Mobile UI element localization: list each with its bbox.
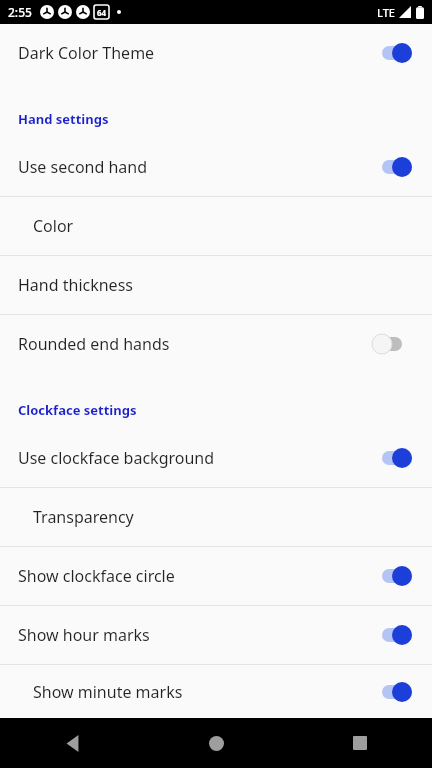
staticText: Hand thickness — [18, 274, 133, 296]
button[interactable]: On — [372, 679, 412, 705]
button[interactable]: On — [372, 622, 412, 648]
staticText: Use clockface background — [18, 447, 215, 469]
staticText: Use second hand — [18, 156, 148, 178]
button[interactable]: Use second hand — [0, 138, 432, 196]
staticText: Show clockface circle — [18, 565, 175, 587]
button[interactable]: Show minute marks — [0, 665, 432, 718]
button[interactable]: Home — [144, 718, 288, 768]
button[interactable]: Transparency — [0, 488, 432, 546]
button[interactable]: Use clockface background — [0, 429, 432, 487]
button[interactable]: On — [372, 154, 412, 180]
button[interactable]: On — [372, 563, 412, 589]
staticText: 64 — [97, 7, 107, 18]
button[interactable]: Dark Color Theme — [0, 24, 432, 82]
staticText: Hand settings — [18, 110, 109, 128]
button[interactable]: Show clockface circle — [0, 547, 432, 605]
staticText: Color — [33, 215, 74, 237]
staticText: Transparency — [33, 506, 134, 528]
staticText: Clockface settings — [18, 401, 137, 419]
button[interactable]: Off — [372, 331, 412, 357]
button[interactable]: On — [372, 40, 412, 66]
button[interactable]: On — [372, 445, 412, 471]
staticText: 2:55 — [8, 4, 32, 20]
button[interactable]: Show hour marks — [0, 606, 432, 664]
button[interactable]: Recent apps — [288, 718, 432, 768]
button[interactable]: Rounded end hands — [0, 315, 432, 373]
button[interactable]: Back — [0, 718, 144, 768]
button[interactable]: Color — [0, 197, 432, 255]
staticText: Show minute marks — [33, 681, 183, 703]
staticText: LTE — [377, 5, 395, 20]
staticText: Rounded end hands — [18, 333, 170, 355]
staticText: Dark Color Theme — [18, 42, 155, 64]
button[interactable]: Hand thickness — [0, 256, 432, 314]
staticText: Show hour marks — [18, 624, 150, 646]
